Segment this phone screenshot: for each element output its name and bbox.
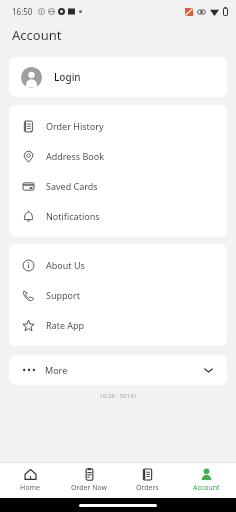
staticText: Rate App <box>46 319 85 331</box>
button[interactable]: Rate App <box>9 310 227 340</box>
staticText: Account <box>12 26 62 44</box>
button[interactable]: Home <box>2 462 58 498</box>
staticText: Order Now <box>71 483 108 493</box>
staticText: Notifications <box>46 210 100 222</box>
staticText: Home <box>20 483 40 493</box>
button[interactable]: Saved Cards <box>9 171 227 201</box>
staticText: Saved Cards <box>46 180 98 192</box>
button[interactable]: Order History <box>9 111 227 141</box>
staticText: Address Book <box>46 150 104 162</box>
button[interactable]: Notifications <box>9 201 227 231</box>
button[interactable]: Address Book <box>9 141 227 171</box>
staticText: More <box>45 364 68 376</box>
button[interactable]: Account <box>178 462 234 498</box>
button[interactable]: Support <box>9 280 227 310</box>
button[interactable]: Orders <box>119 462 175 498</box>
staticText: Account <box>193 483 220 493</box>
staticText: Login <box>54 70 81 84</box>
other: Expand more <box>204 368 213 373</box>
staticText: About Us <box>46 259 85 271</box>
button[interactable]: Order Now <box>61 462 117 498</box>
staticText: 16:50 <box>12 6 33 17</box>
staticText: Orders <box>136 483 159 493</box>
button[interactable]: More <box>9 355 227 385</box>
button[interactable]: Login <box>9 57 227 97</box>
staticText: 10.28 - 50147 <box>0 392 236 400</box>
staticText: Support <box>46 289 80 301</box>
button[interactable]: About Us <box>9 250 227 280</box>
staticText: Order History <box>46 120 104 132</box>
